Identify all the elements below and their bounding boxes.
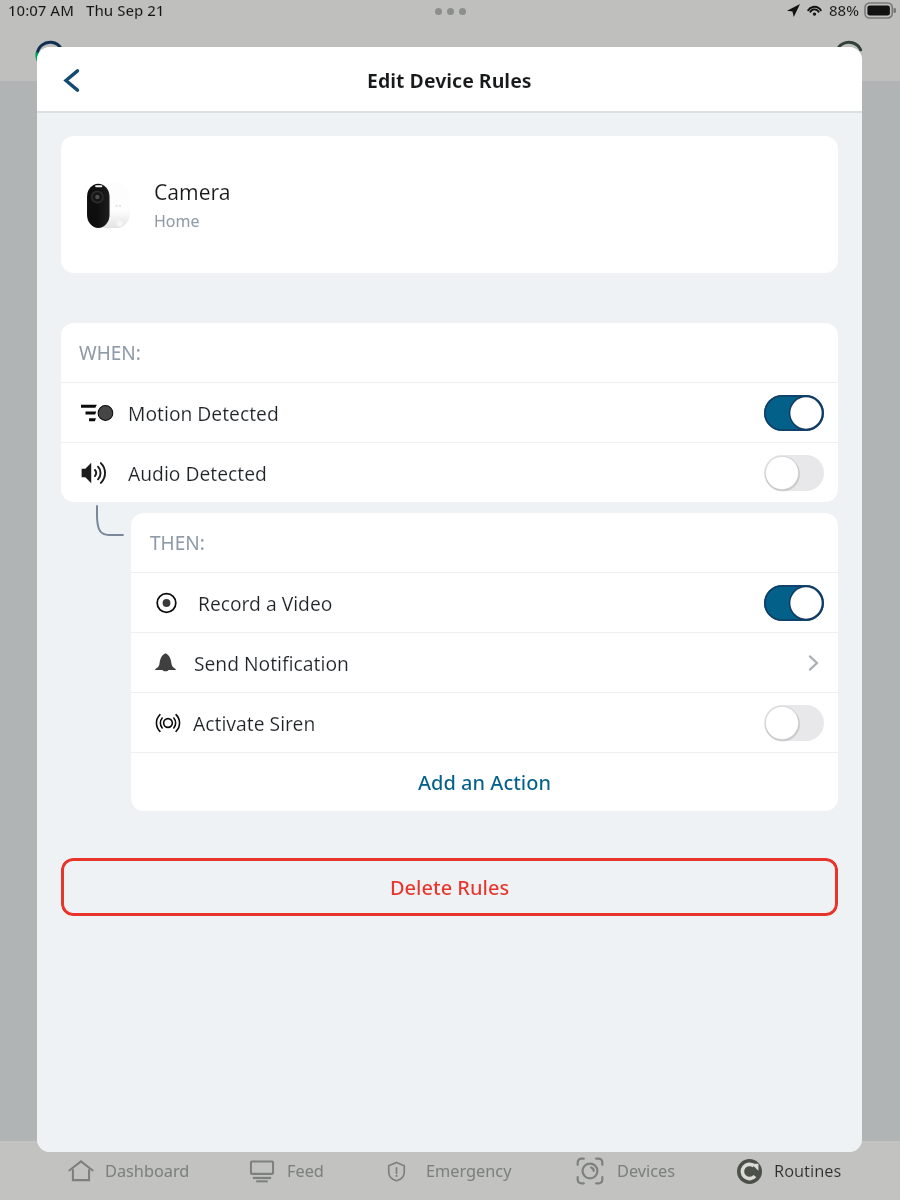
staticText: Camera [154, 178, 231, 207]
button[interactable]: Toggle on [764, 395, 824, 431]
staticText: Audio Detected [128, 460, 267, 486]
button[interactable]: Send Notification [131, 633, 838, 692]
button[interactable]: Motion Detected [61, 383, 838, 442]
staticText: Emergency [426, 1160, 512, 1182]
staticText: WHEN: [79, 340, 141, 366]
staticText: Home [154, 210, 200, 232]
staticText: Devices [617, 1160, 676, 1182]
staticText: Delete Rules [390, 874, 510, 901]
button[interactable]: Devices [576, 1141, 676, 1200]
staticText: 10:07 AM [8, 0, 74, 20]
button[interactable]: Camera [61, 136, 838, 273]
staticText: THEN: [150, 530, 205, 556]
button[interactable]: Dashboard [68, 1141, 190, 1200]
button[interactable]: Delete Rules [61, 858, 838, 916]
staticText: Record a Video [198, 590, 333, 616]
button[interactable]: Toggle off [764, 455, 824, 491]
staticText: Thu Sep 21 [86, 0, 165, 20]
staticText: Send Notification [194, 650, 349, 676]
staticText: 88% [829, 0, 859, 20]
staticText: Routines [774, 1160, 842, 1182]
staticText: Feed [287, 1160, 324, 1182]
button[interactable]: Record a Video [131, 573, 838, 632]
staticText: Motion Detected [128, 400, 279, 426]
staticText: Add an Action [418, 769, 552, 796]
button[interactable]: Feed [250, 1141, 324, 1200]
button[interactable]: Back [47, 56, 95, 104]
staticText: Dashboard [105, 1160, 190, 1182]
staticText: Edit Device Rules [367, 67, 532, 94]
staticText: Activate Siren [193, 710, 316, 736]
button[interactable]: Toggle on [764, 585, 824, 621]
button[interactable]: Toggle off [764, 705, 824, 741]
button[interactable]: Add an Action [131, 753, 838, 811]
button[interactable]: Audio Detected [61, 443, 838, 502]
button[interactable]: Activate Siren [131, 693, 838, 752]
button[interactable]: Routines [737, 1141, 842, 1200]
button[interactable]: Emergency [386, 1141, 512, 1200]
